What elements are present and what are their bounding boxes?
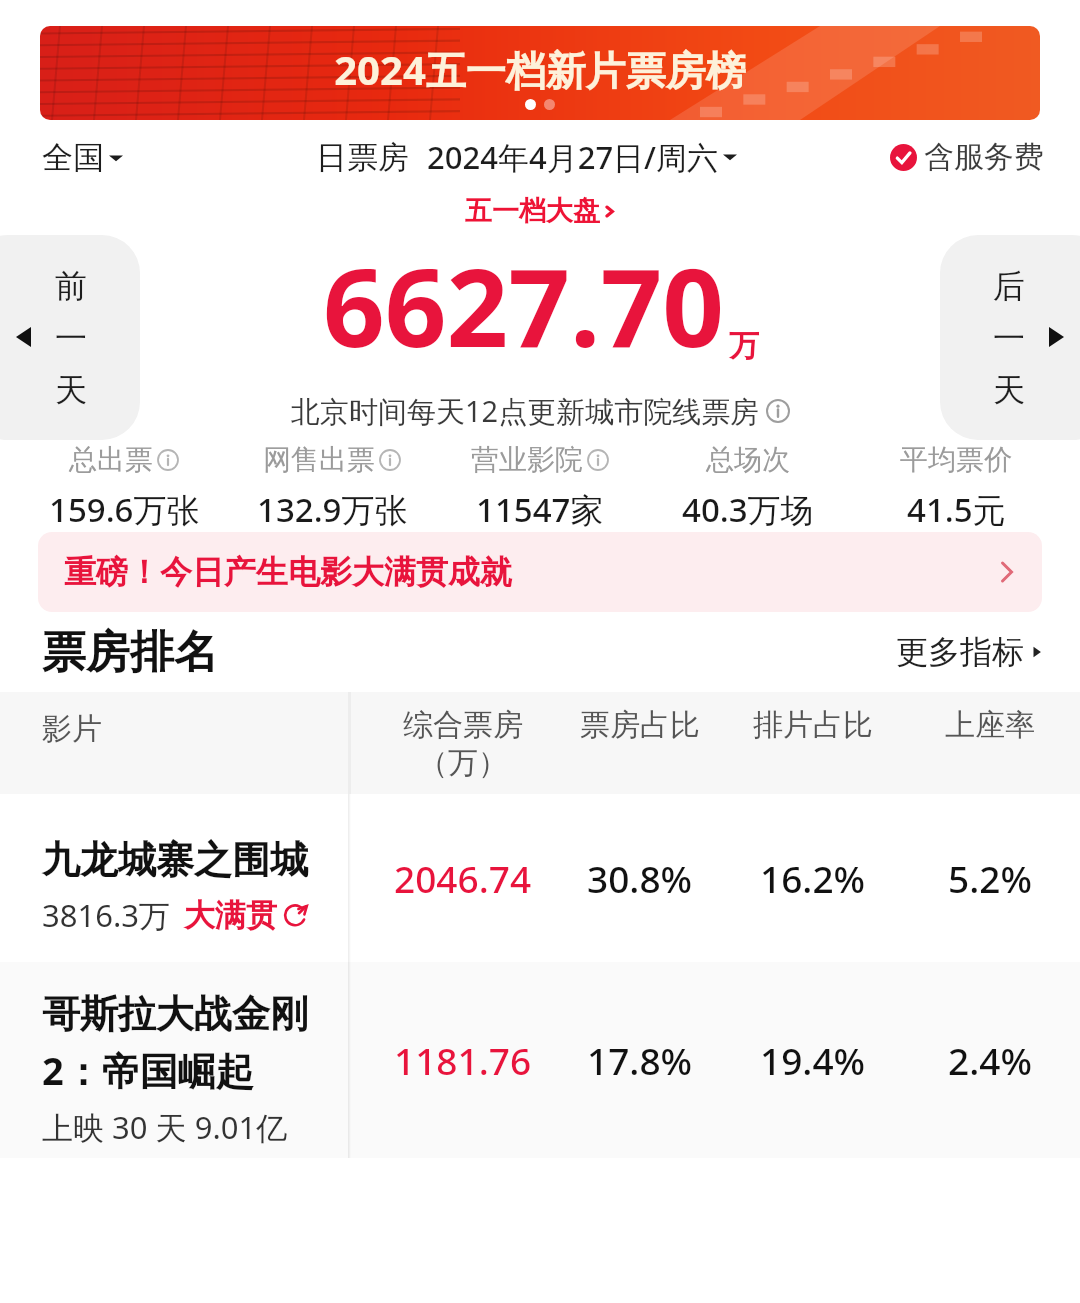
staticText: 天 <box>55 370 87 410</box>
other: 含服务费 <box>890 144 917 171</box>
button[interactable]: 营业影院 <box>436 442 644 532</box>
button[interactable]: 含服务费 <box>890 138 1044 176</box>
staticText: 上座率 <box>945 706 1035 744</box>
staticText: 北京时间每天12点更新城市院线票房 <box>291 391 760 431</box>
staticText: 万 <box>729 327 759 365</box>
staticText: 前 <box>55 266 87 306</box>
staticText: 影片 <box>42 710 102 748</box>
staticText: 九龙城寨之围城 <box>42 836 308 884</box>
other: 前一天 <box>16 327 36 347</box>
staticText: 30.8% <box>587 853 693 903</box>
staticText: 2.4% <box>948 1035 1032 1085</box>
staticText: 17.8% <box>587 1035 693 1085</box>
staticText: 159.6万张 <box>49 487 200 532</box>
staticText: 综合票房 <box>403 706 523 744</box>
staticText: 41.5元 <box>907 487 1006 532</box>
button[interactable]: 九龙城寨之围城 <box>0 794 1080 962</box>
button[interactable]: 总出票 <box>20 442 228 532</box>
other: 大满贯详情 <box>281 900 311 930</box>
button[interactable]: 2024五一档新片票房榜 <box>40 26 1040 120</box>
button[interactable]: 总场次 <box>644 442 852 532</box>
staticText: 5.2% <box>948 853 1032 903</box>
button[interactable]: 重磅！今日产生电影大满贯成就 <box>38 532 1042 612</box>
staticText: 2：帝国崛起 <box>42 1044 254 1096</box>
staticText: 网售出票 <box>263 442 375 477</box>
staticText: 一 <box>993 318 1025 358</box>
button[interactable]: 后 <box>940 235 1080 440</box>
staticText: 票房排名 <box>42 625 218 680</box>
staticText: 40.3万场 <box>682 487 814 532</box>
staticText: 总出票 <box>69 442 153 477</box>
staticText: 11547家 <box>476 487 604 532</box>
staticText: 上映 30 天 9.01亿 <box>42 1106 288 1148</box>
staticText: 排片占比 <box>753 706 873 744</box>
staticText: 2046.74 <box>394 853 532 903</box>
button[interactable]: 五一档大盘 <box>465 194 616 228</box>
staticText: 6627.70 <box>323 232 725 379</box>
button[interactable]: 更多指标 <box>896 632 1044 672</box>
staticText: 总场次 <box>706 442 790 477</box>
staticText: 一 <box>55 318 87 358</box>
staticText: 全国 <box>42 138 104 177</box>
button[interactable]: 平均票价 <box>852 442 1060 532</box>
staticText: 天 <box>993 370 1025 410</box>
button[interactable]: 日票房 <box>316 136 737 178</box>
staticText: 五一档大盘 <box>465 194 600 228</box>
staticText: 3816.3万 <box>42 894 170 936</box>
staticText: 16.2% <box>760 853 866 903</box>
staticText: 更多指标 <box>896 632 1024 672</box>
staticText: 后 <box>993 266 1025 306</box>
button[interactable]: 哥斯拉大战金刚 <box>0 962 1080 1158</box>
staticText: 2024年4月27日/周六 <box>427 136 719 178</box>
staticText: 大满贯 <box>184 896 277 935</box>
staticText: 19.4% <box>760 1035 866 1085</box>
staticText: 营业影院 <box>471 442 583 477</box>
other: 后一天 <box>1044 327 1064 347</box>
staticText: 重磅！今日产生电影大满贯成就 <box>64 552 512 592</box>
button[interactable]: 网售出票 <box>228 442 436 532</box>
staticText: 日票房 <box>316 138 409 177</box>
staticText: 132.9万张 <box>257 487 408 532</box>
staticText: 票房占比 <box>580 706 700 744</box>
staticText: 含服务费 <box>924 138 1044 176</box>
button[interactable]: 前 <box>0 235 140 440</box>
staticText: 2024五一档新片票房榜 <box>40 42 1040 97</box>
staticText: 1181.76 <box>394 1035 532 1085</box>
staticText: （万） <box>418 744 508 782</box>
button[interactable]: 全国 <box>42 138 123 177</box>
staticText: 平均票价 <box>900 442 1012 477</box>
staticText: 哥斯拉大战金刚 <box>42 990 308 1038</box>
